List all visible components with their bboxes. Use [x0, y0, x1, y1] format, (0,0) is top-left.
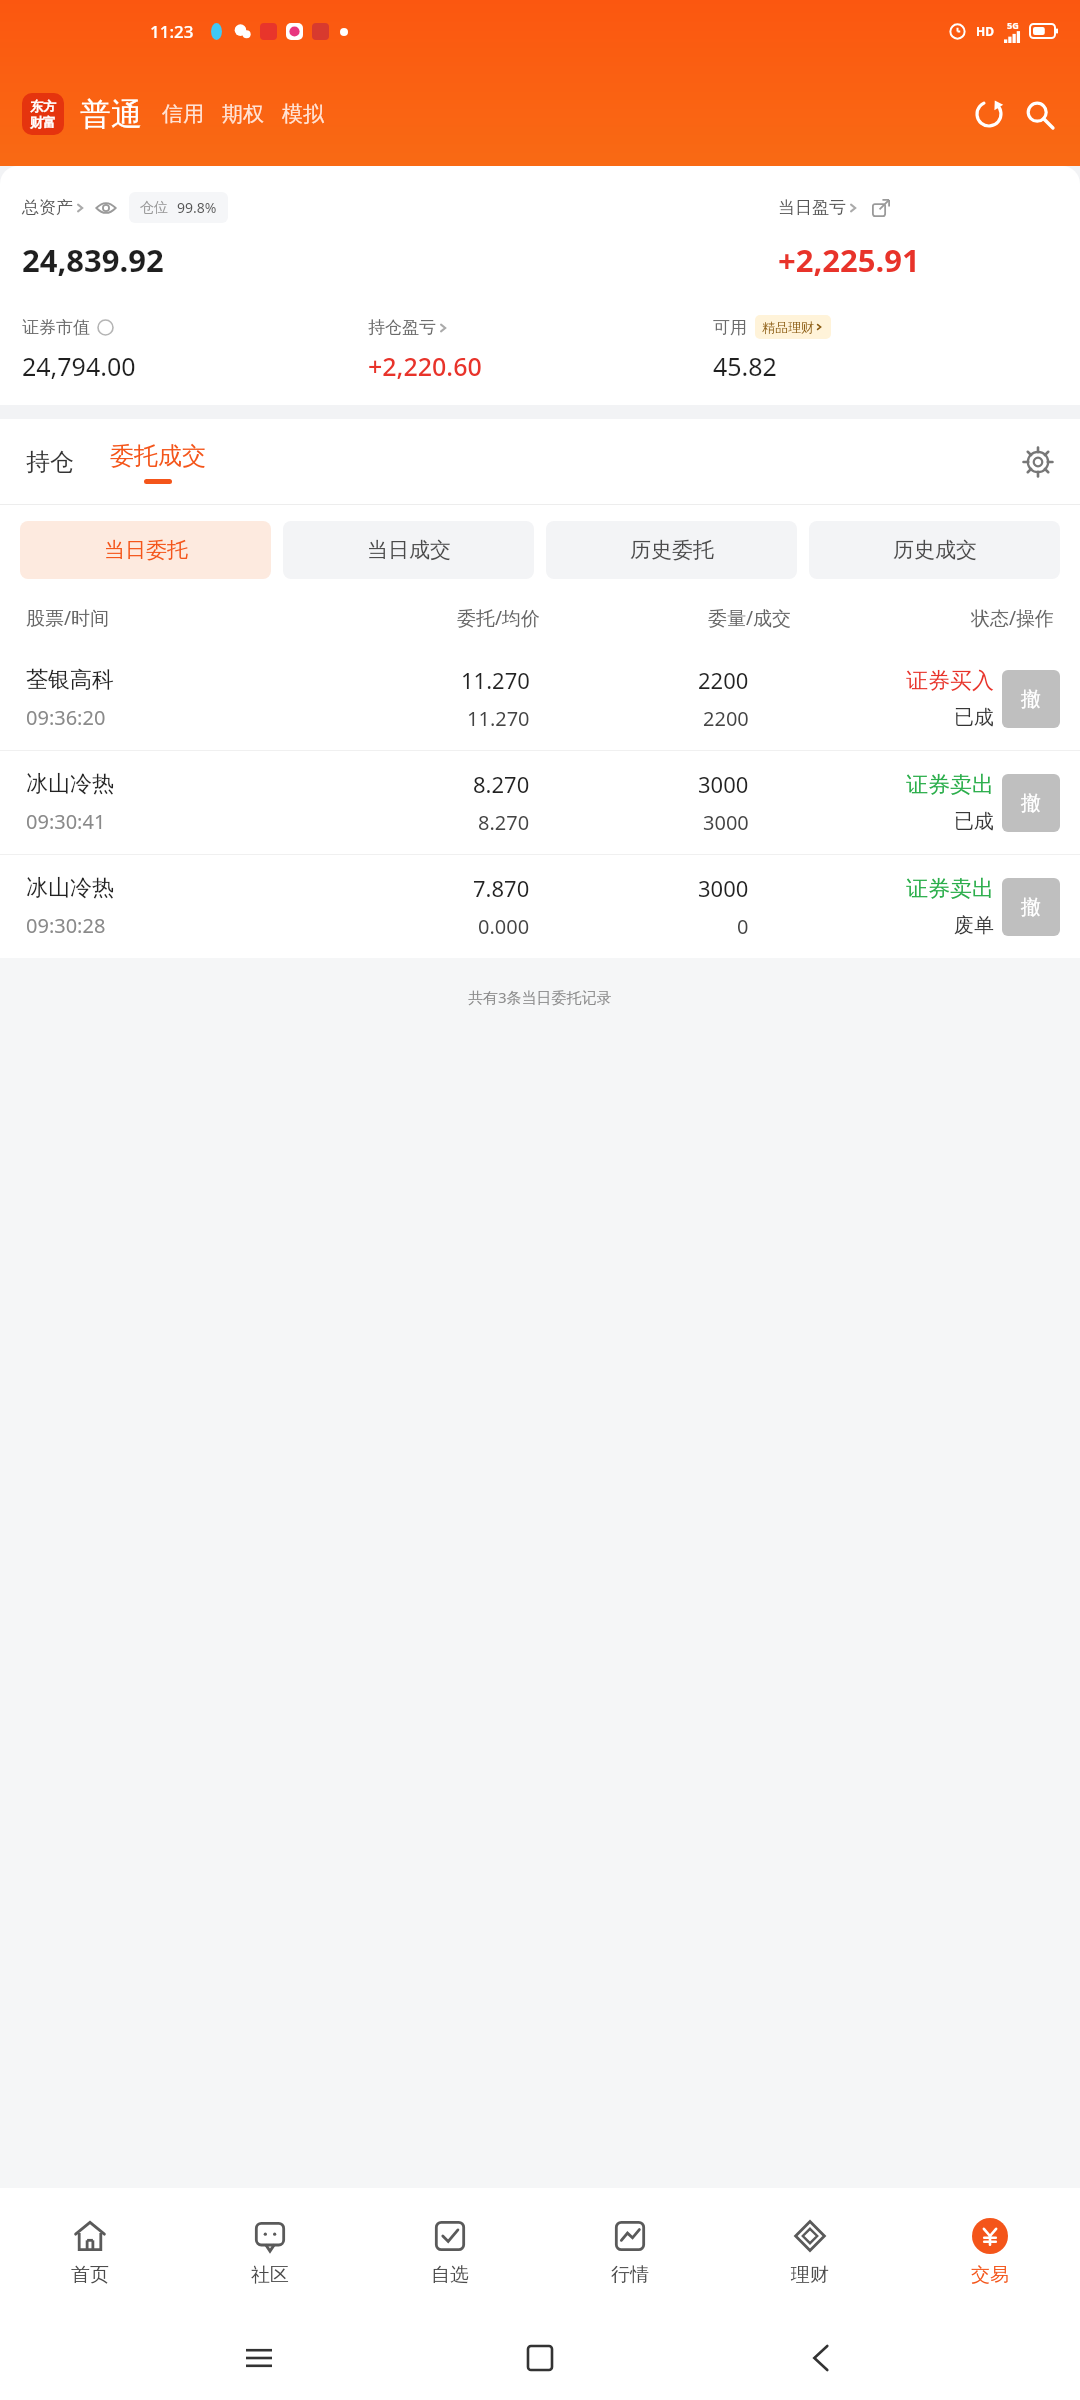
staticText: 证券卖出 — [906, 771, 994, 799]
staticText: 撤 — [1021, 687, 1041, 712]
staticText: 3000 — [703, 809, 749, 836]
staticText: 证券市值 — [22, 317, 90, 338]
staticText: 当日成交 — [367, 537, 451, 563]
button[interactable]: 委托成交 — [110, 441, 206, 484]
staticText: 期权 — [222, 101, 264, 127]
staticText: 8.270 — [473, 769, 530, 799]
staticText: 首页 — [71, 2263, 109, 2287]
staticText: 11:23 — [150, 20, 194, 43]
button[interactable]: Back — [799, 2335, 845, 2381]
staticText: 持仓 — [26, 447, 74, 477]
button[interactable]: 自选 — [360, 2188, 540, 2316]
staticText: 社区 — [251, 2263, 289, 2287]
staticText: 普通 — [80, 95, 142, 134]
button[interactable]: 首页 — [0, 2188, 180, 2316]
button[interactable]: Refresh — [970, 95, 1008, 133]
button[interactable]: 撤 — [1002, 774, 1060, 832]
button[interactable]: 东方 — [22, 93, 64, 135]
staticText: 自选 — [431, 2263, 469, 2287]
button[interactable]: 社区 — [180, 2188, 360, 2316]
staticText: 45.82 — [713, 349, 1058, 383]
staticText: 已成 — [954, 705, 994, 730]
staticText: 可用 — [713, 317, 747, 338]
staticText: 证券卖出 — [906, 875, 994, 903]
button[interactable]: 历史委托 — [546, 521, 797, 579]
button[interactable]: 撤 — [1002, 878, 1060, 936]
staticText: 冰山冷热 — [26, 874, 114, 902]
button[interactable]: Search — [1020, 95, 1058, 133]
staticText: 8.270 — [478, 809, 530, 836]
staticText: 11.270 — [467, 705, 530, 732]
staticText: HD — [976, 23, 994, 39]
staticText: 状态/操作 — [791, 605, 1054, 631]
staticText: 委量/成交 — [540, 605, 791, 631]
staticText: 已成 — [954, 809, 994, 834]
staticText: 持仓盈亏 — [368, 317, 436, 338]
button[interactable]: Toggle visibility — [95, 197, 117, 219]
staticText: 3000 — [698, 769, 749, 799]
staticText: 历史成交 — [893, 537, 977, 563]
staticText: 信用 — [162, 101, 204, 127]
staticText: 11.270 — [461, 665, 530, 695]
staticText: 7.870 — [473, 873, 530, 903]
staticText: 0 — [737, 913, 749, 940]
staticText: 理财 — [791, 2263, 829, 2287]
button[interactable]: 普通 — [80, 95, 142, 134]
staticText: 仓位 — [140, 199, 168, 217]
staticText: 冰山冷热 — [26, 770, 114, 798]
staticText: 股票/时间 — [26, 605, 289, 631]
button[interactable]: 当日成交 — [283, 521, 534, 579]
staticText: 共有3条当日委托记录 — [468, 987, 612, 1007]
staticText: 历史委托 — [630, 537, 714, 563]
button[interactable]: 交易 — [900, 2188, 1080, 2316]
button[interactable]: 当日盈亏 — [778, 197, 1058, 218]
staticText: 模拟 — [282, 101, 324, 127]
staticText: 废单 — [954, 913, 994, 938]
button[interactable]: 理财 — [720, 2188, 900, 2316]
staticText: 财富 — [30, 114, 56, 130]
button[interactable]: Home — [517, 2335, 563, 2381]
staticText: 证券买入 — [906, 667, 994, 695]
staticText: 荃银高科 — [26, 666, 114, 694]
button[interactable]: 历史成交 — [809, 521, 1060, 579]
staticText: +2,220.60 — [368, 349, 713, 383]
button[interactable]: 冰山冷热 — [0, 855, 1080, 958]
button[interactable]: 当日委托 — [20, 521, 271, 579]
button[interactable]: Settings — [1018, 442, 1058, 482]
button[interactable]: Recents — [236, 2335, 282, 2381]
staticText: 09:30:28 — [26, 912, 106, 939]
staticText: 精品理财 — [762, 319, 814, 335]
staticText: 交易 — [971, 2263, 1009, 2287]
button[interactable]: 持仓盈亏 — [368, 317, 713, 338]
staticText: 委托成交 — [110, 441, 206, 471]
staticText: 委托/均价 — [289, 605, 540, 631]
staticText: 99.8% — [177, 198, 217, 217]
staticText: 撤 — [1021, 791, 1041, 816]
staticText: 当日盈亏 — [778, 197, 846, 218]
button[interactable]: 模拟 — [282, 101, 324, 127]
button[interactable]: 期权 — [222, 101, 264, 127]
button[interactable]: 总资产 — [22, 197, 87, 218]
staticText: 0.000 — [478, 913, 530, 940]
staticText: 09:36:20 — [26, 704, 106, 731]
button[interactable]: 信用 — [162, 101, 204, 127]
button[interactable]: 荃银高科 — [0, 647, 1080, 750]
staticText: 行情 — [611, 2263, 649, 2287]
button[interactable]: 冰山冷热 — [0, 751, 1080, 854]
button[interactable]: 精品理财 — [755, 315, 831, 339]
staticText: 5G — [1007, 19, 1019, 31]
staticText: +2,225.91 — [778, 239, 920, 281]
staticText: 总资产 — [22, 197, 73, 218]
button[interactable]: 仓位 — [129, 192, 228, 223]
staticText: 撤 — [1021, 895, 1041, 920]
button[interactable]: 撤 — [1002, 670, 1060, 728]
staticText: 3000 — [698, 873, 749, 903]
button[interactable]: 行情 — [540, 2188, 720, 2316]
button[interactable]: 证券市值 — [22, 317, 368, 338]
button[interactable]: 持仓 — [22, 447, 78, 477]
staticText: 当日委托 — [104, 537, 188, 563]
staticText: 2200 — [698, 665, 749, 695]
staticText: 09:30:41 — [26, 808, 106, 835]
staticText: 24,794.00 — [22, 349, 368, 383]
staticText: 2200 — [703, 705, 749, 732]
